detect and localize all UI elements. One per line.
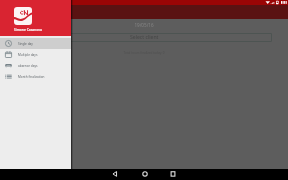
staticText: 19/05/16	[0, 22, 288, 28]
button[interactable]: Back	[108, 169, 122, 180]
button[interactable]: Multiple days	[0, 49, 71, 60]
staticText: Multiple days	[18, 53, 38, 57]
staticText: Single day	[18, 42, 33, 46]
button[interactable]: Select client	[16, 33, 272, 42]
staticText: Select client	[130, 34, 159, 41]
button[interactable]: Home	[138, 169, 152, 180]
staticText: Total hours finalized today: 0	[0, 51, 288, 55]
staticText: Month finalization	[18, 75, 45, 79]
staticText: Simone Casanova	[14, 27, 42, 31]
staticText: absence days	[18, 64, 38, 68]
button[interactable]: absence days	[0, 60, 71, 71]
button[interactable]: Single day	[0, 38, 71, 49]
button[interactable]: Recent apps	[166, 169, 180, 180]
button[interactable]: Month finalization	[0, 71, 71, 82]
